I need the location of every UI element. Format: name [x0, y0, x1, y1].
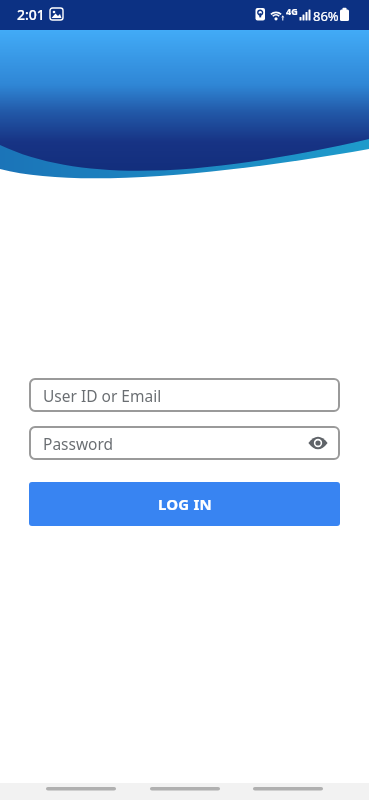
staticText: Password: [43, 433, 114, 454]
staticText: User ID or Email: [43, 385, 162, 406]
staticText: 4G: [286, 5, 298, 17]
button[interactable]: User ID or Email: [29, 378, 340, 412]
button[interactable]: Password: [29, 426, 340, 460]
button[interactable]: [308, 436, 328, 450]
staticText: 86%: [313, 7, 339, 25]
staticText: 2:01: [17, 5, 45, 24]
button[interactable]: LOG IN: [29, 482, 340, 526]
staticText: LOG IN: [158, 494, 212, 514]
